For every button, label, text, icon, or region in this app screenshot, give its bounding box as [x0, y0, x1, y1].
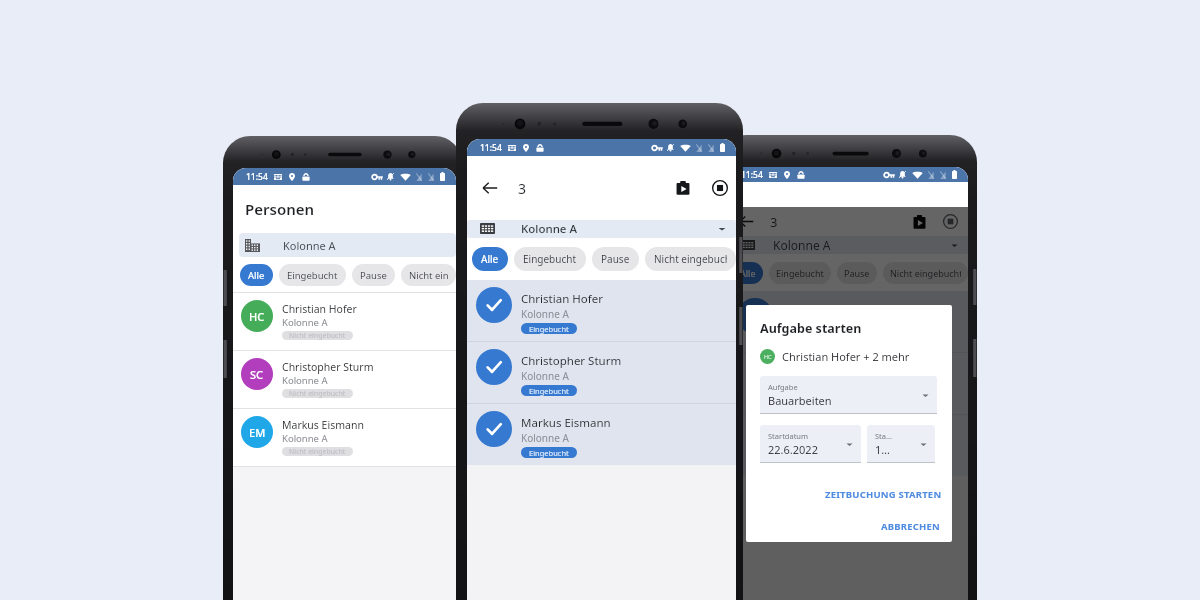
staticText: Eingebucht — [776, 267, 824, 279]
staticText: 11:54 — [741, 169, 763, 181]
button[interactable]: Pause — [837, 262, 877, 284]
button[interactable]: Kolonne A — [239, 233, 456, 257]
staticText: HC — [764, 353, 772, 360]
staticText: Christopher Sturm — [521, 353, 622, 369]
staticText: Christopher Sturm — [282, 360, 374, 374]
staticText: Alle — [740, 267, 756, 279]
staticText: Pause — [360, 269, 387, 282]
staticText: Kolonne A — [282, 432, 328, 445]
button[interactable]: Nicht eingebucht — [401, 264, 456, 286]
staticText: Pause — [601, 252, 630, 266]
button[interactable]: Eingebucht — [769, 262, 831, 284]
staticText: Alle — [481, 252, 499, 266]
staticText: Christian Hofer — [521, 291, 603, 307]
staticText: Eingebucht — [529, 386, 569, 396]
staticText: Kolonne A — [282, 316, 328, 329]
staticText: Markus Eismann — [521, 415, 611, 431]
button[interactable]: Christopher Sturm — [467, 342, 736, 403]
button[interactable]: Markus Eismann — [467, 404, 736, 465]
staticText: Eingebucht — [523, 252, 577, 266]
button[interactable]: Kolonne A — [467, 220, 736, 238]
staticText: Kolonne A — [521, 369, 569, 383]
staticText: Bauarbeiten — [768, 393, 832, 408]
staticText: Kolonne A — [282, 374, 328, 387]
staticText: Nicht eingebucht — [289, 331, 346, 340]
staticText: 11:54 — [246, 171, 268, 183]
staticText: Nicht eingebucht — [890, 267, 961, 279]
staticText: 1… — [875, 442, 890, 457]
button[interactable]: HC — [233, 293, 456, 350]
staticText: ZEITBUCHUNG STARTEN — [825, 488, 942, 501]
staticText: 3 — [518, 179, 527, 198]
button[interactable]: Eingebucht — [279, 264, 346, 286]
staticText: Startdatum — [768, 431, 809, 441]
button[interactable]: Eingebucht — [514, 247, 586, 271]
staticText: Kolonne A — [782, 318, 830, 332]
staticText: Alle — [248, 269, 265, 282]
staticText: Nicht eingebucht — [409, 269, 448, 282]
button[interactable]: Back — [479, 177, 501, 199]
button[interactable]: Pause — [352, 264, 395, 286]
staticText: 11:54 — [480, 142, 502, 154]
staticText: ABBRECHEN — [881, 520, 940, 533]
staticText: Personen — [245, 199, 315, 219]
staticText: Eingebucht — [287, 269, 338, 282]
button[interactable]: Alle — [472, 247, 508, 271]
button[interactable]: Alle — [733, 262, 763, 284]
button[interactable]: EM — [233, 409, 456, 466]
button[interactable]: Aufgabe — [760, 376, 937, 414]
staticText: Eingebucht — [529, 448, 569, 458]
button[interactable]: Christian Hofer — [467, 280, 736, 341]
button[interactable]: Sta… — [867, 425, 935, 463]
staticText: Christian Hofer + 2 mehr — [782, 349, 910, 364]
staticText: SC — [250, 367, 264, 382]
button[interactable]: Nicht eingebucht — [645, 247, 736, 271]
staticText: Markus Eismann — [282, 418, 364, 432]
staticText: Christian Hofer — [282, 302, 357, 316]
button[interactable]: Stop time tracking — [709, 177, 731, 199]
button[interactable]: Assign task — [672, 177, 694, 199]
staticText: Sta… — [875, 431, 892, 441]
staticText: EM — [249, 425, 266, 440]
staticText: 22.6.2022 — [768, 442, 818, 457]
button[interactable]: Nicht eingebucht — [883, 262, 968, 284]
staticText: Nicht eingebucht — [654, 252, 727, 266]
staticText: HC — [249, 309, 265, 324]
staticText: Kolonne A — [283, 238, 336, 253]
staticText: Kolonne A — [773, 237, 831, 253]
button[interactable]: Pause — [592, 247, 639, 271]
staticText: Nicht eingebucht — [289, 389, 346, 398]
button[interactable]: SC — [233, 351, 456, 408]
staticText: Nicht eingebucht — [289, 447, 346, 456]
staticText: Pause — [844, 267, 870, 279]
staticText: Aufgabe starten — [760, 320, 862, 337]
button[interactable]: Alle — [240, 264, 273, 286]
staticText: Aufgabe — [768, 382, 798, 392]
button[interactable]: Startdatum — [760, 425, 861, 463]
button[interactable]: ZEITBUCHUNG STARTEN — [820, 484, 947, 505]
staticText: Kolonne A — [521, 431, 569, 445]
staticText: Eingebucht — [529, 324, 569, 334]
staticText: Christian Hofer — [782, 302, 864, 318]
staticText: Kolonne A — [521, 221, 577, 237]
staticText: Kolonne A — [521, 307, 569, 321]
staticText: 3 — [770, 213, 778, 231]
button[interactable]: ABBRECHEN — [876, 516, 945, 537]
